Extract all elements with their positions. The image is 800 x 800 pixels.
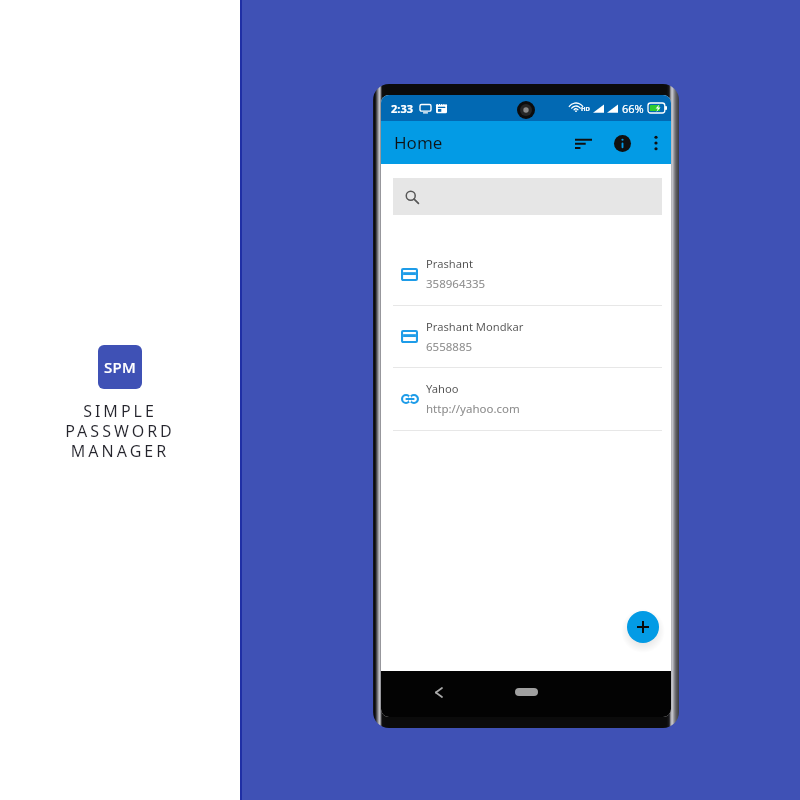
staticText: http://yahoo.com xyxy=(426,401,520,417)
button[interactable]: Info xyxy=(606,127,638,159)
staticText: 66% xyxy=(622,101,644,116)
staticText: SIMPLE PASSWORD MANAGER xyxy=(65,400,175,461)
staticText: Prashant xyxy=(426,256,473,271)
button[interactable]: More options xyxy=(641,128,671,158)
staticText: 6558885 xyxy=(426,339,473,355)
staticText: 2:33 xyxy=(391,101,413,116)
button[interactable]: Home xyxy=(515,688,538,696)
button[interactable]: Prashant xyxy=(381,243,671,305)
button[interactable]: Add xyxy=(627,611,659,643)
staticText: Home xyxy=(394,131,443,154)
staticText: HD xyxy=(581,105,590,113)
staticText: 358964335 xyxy=(426,276,486,292)
staticText: SPM xyxy=(104,357,137,377)
staticText: Prashant Mondkar xyxy=(426,319,524,334)
button[interactable]: Sort xyxy=(567,127,599,159)
button[interactable]: Yahoo xyxy=(381,368,671,430)
button[interactable]: Prashant Mondkar xyxy=(381,306,671,367)
staticText: Yahoo xyxy=(426,381,459,396)
button[interactable]: Search xyxy=(393,178,662,215)
button[interactable]: Back xyxy=(426,680,450,704)
